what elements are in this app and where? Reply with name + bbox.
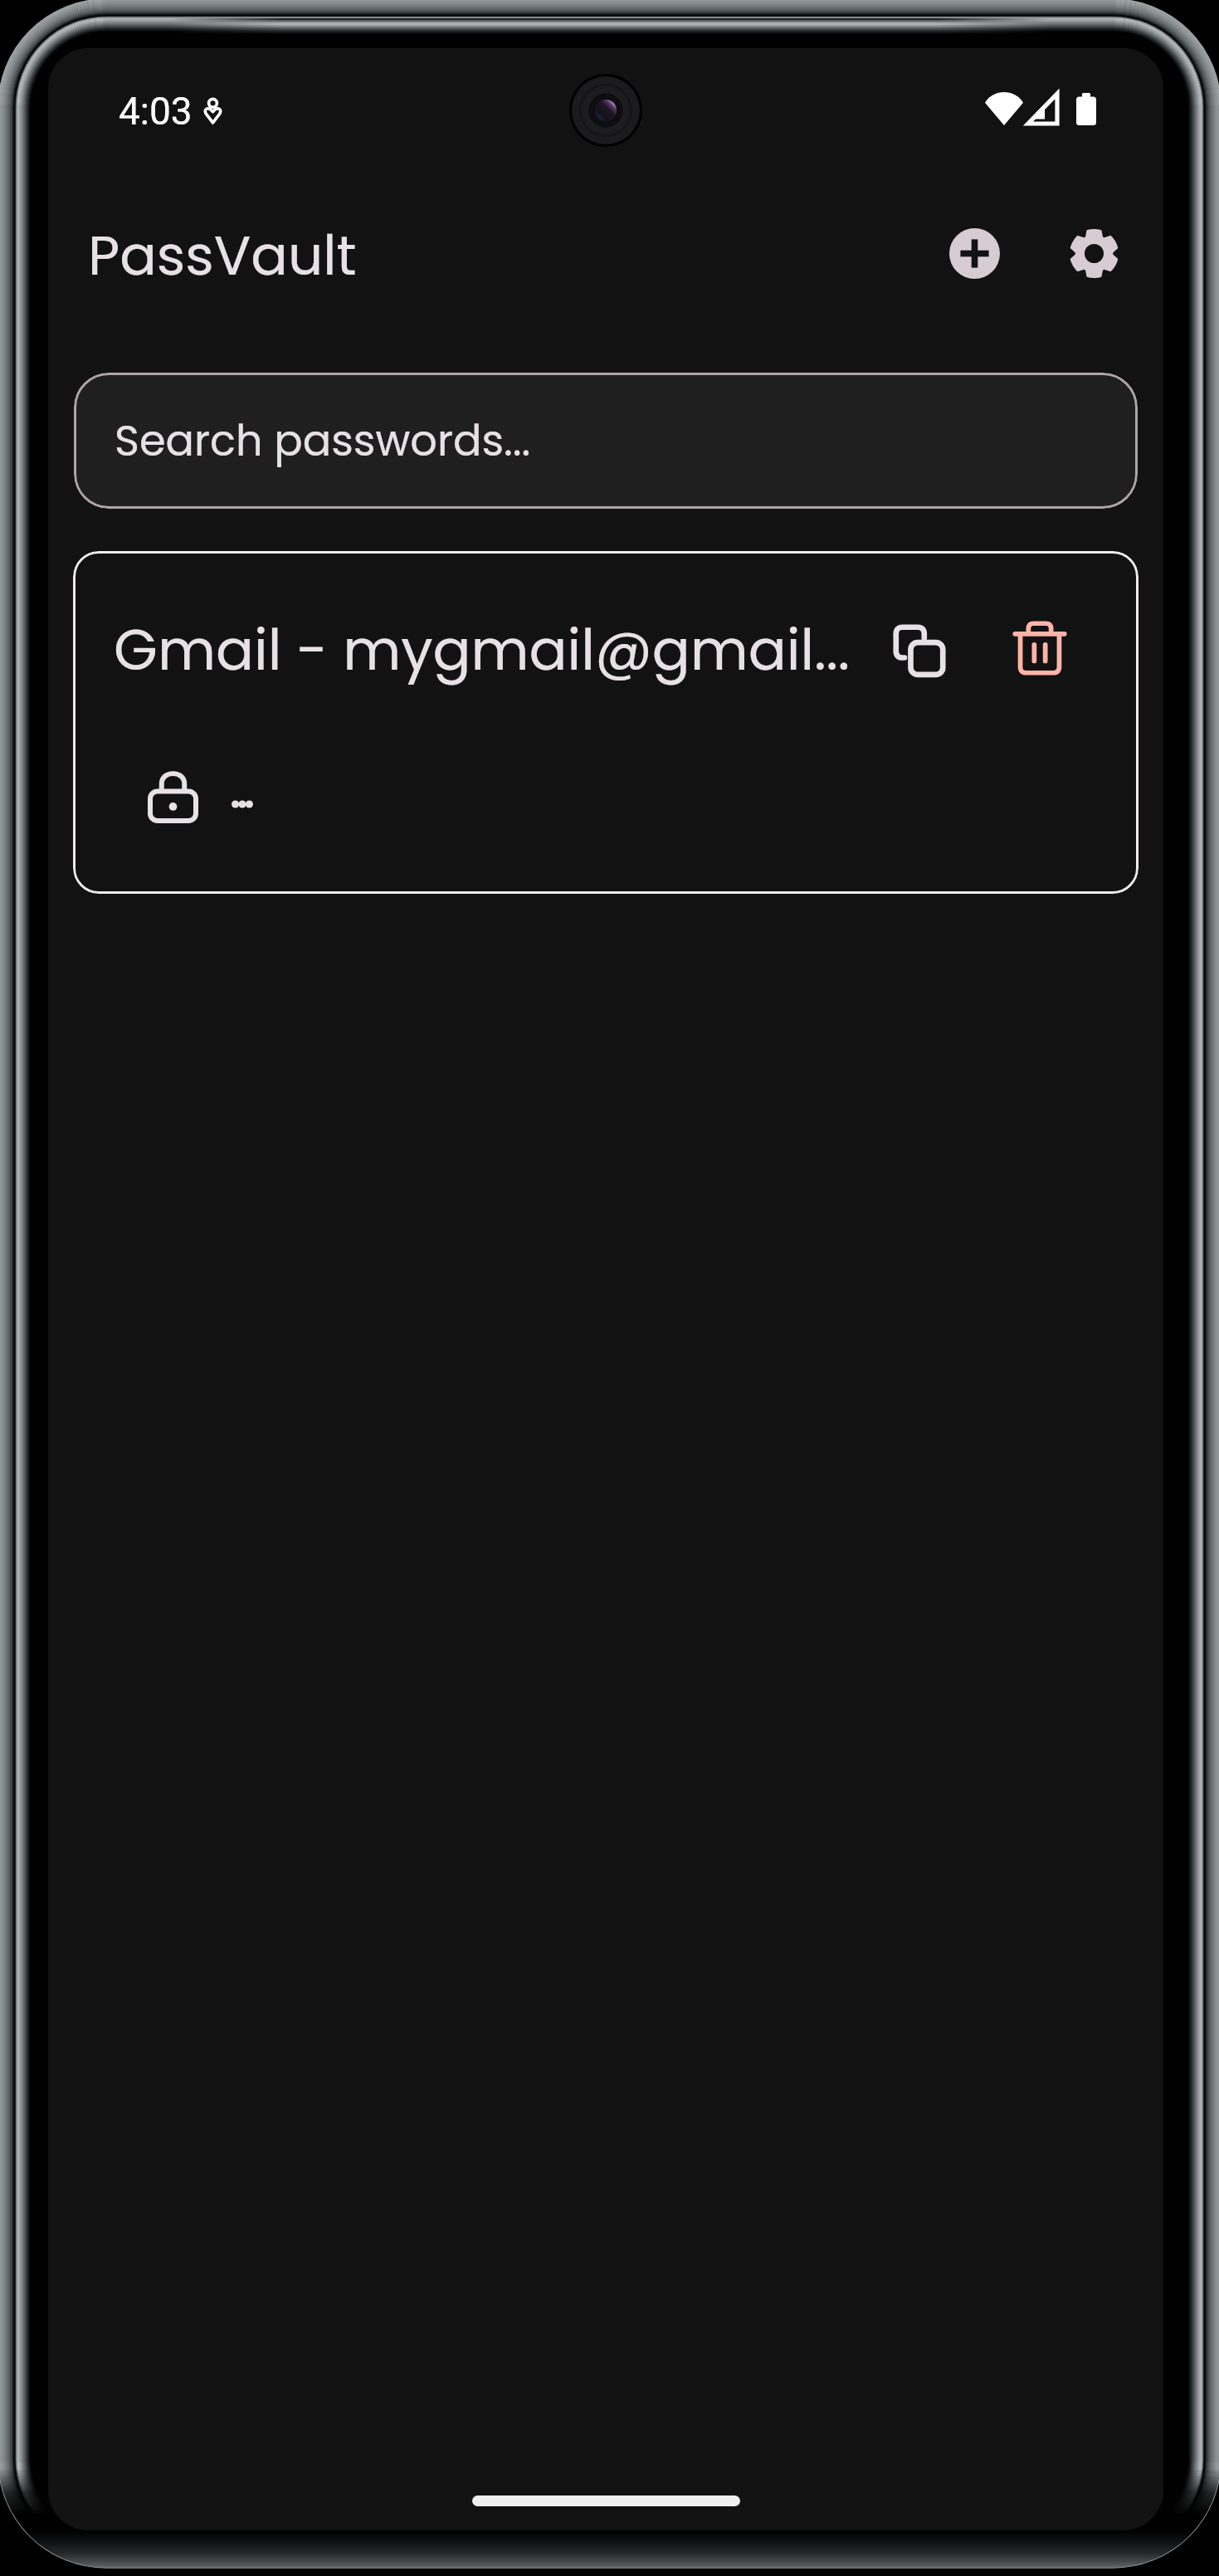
button[interactable]: Add password — [936, 215, 1012, 291]
button[interactable]: Search passwords... — [74, 373, 1138, 509]
button[interactable]: Copy password — [871, 603, 968, 699]
staticText: 4:03 — [119, 89, 193, 134]
button[interactable]: Delete password — [994, 603, 1085, 694]
staticText: PassVault — [88, 217, 357, 294]
button[interactable]: Settings — [1056, 215, 1132, 291]
button[interactable]: Gmail - mygmail@gmail... — [73, 551, 1139, 894]
staticText: Gmail - mygmail@gmail... — [114, 611, 851, 690]
staticText: Search passwords... — [115, 411, 531, 470]
